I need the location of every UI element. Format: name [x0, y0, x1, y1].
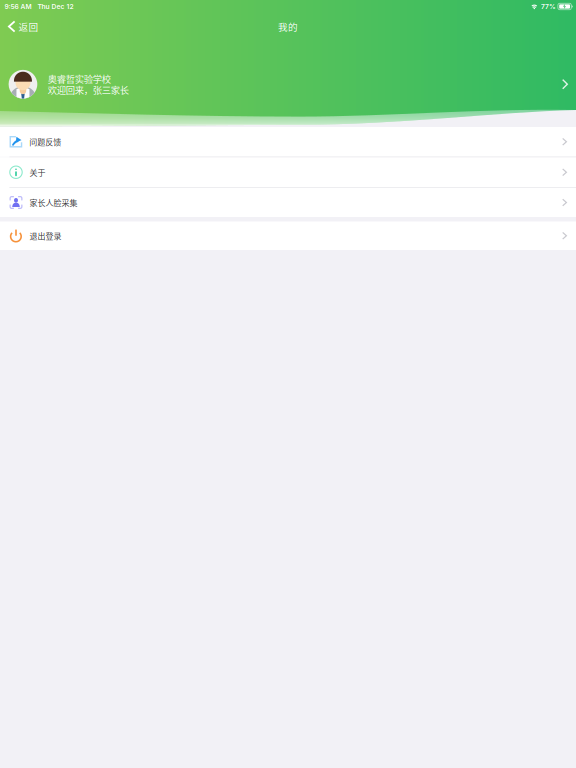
- staticText: 奥睿哲实验学校: [48, 72, 111, 85]
- staticText: 退出登录: [29, 230, 61, 242]
- staticText: 返回: [18, 19, 38, 33]
- staticText: 家长人脸采集: [29, 197, 77, 208]
- button[interactable]: 家长人脸采集: [0, 188, 576, 217]
- button[interactable]: 奥睿哲实验学校: [0, 65, 576, 104]
- button[interactable]: 问题反馈: [0, 127, 576, 156]
- staticText: Thu Dec 12: [37, 2, 73, 11]
- staticText: 关于: [29, 166, 45, 178]
- staticText: 问题反馈: [29, 136, 61, 148]
- button[interactable]: 退出登录: [0, 221, 576, 250]
- staticText: 欢迎回来，张三家长: [48, 83, 129, 96]
- staticText: 9:56 AM: [4, 2, 31, 11]
- button[interactable]: 返回: [0, 13, 46, 40]
- button[interactable]: 关于: [0, 157, 576, 187]
- staticText: 我的: [278, 19, 298, 33]
- staticText: 77%: [541, 2, 556, 11]
